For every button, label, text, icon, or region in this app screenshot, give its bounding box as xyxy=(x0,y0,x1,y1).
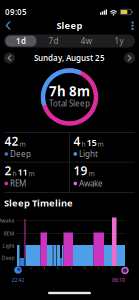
staticText: Awake xyxy=(79,178,103,189)
staticText: Sunday, August 25 xyxy=(34,53,105,63)
staticText: 22:42 xyxy=(11,276,24,284)
staticText: m xyxy=(28,169,34,178)
staticText: Total Sleep xyxy=(49,98,90,109)
staticText: Deep xyxy=(1,254,14,261)
button[interactable] xyxy=(4,52,15,63)
staticText: m xyxy=(19,140,25,148)
staticText: Awake xyxy=(0,217,14,224)
button[interactable] xyxy=(126,18,138,32)
staticText: Light xyxy=(2,242,14,249)
staticText: 4w xyxy=(81,36,92,46)
staticText: Sleep xyxy=(56,19,82,32)
staticText: 7d xyxy=(49,36,59,46)
button[interactable] xyxy=(124,52,135,63)
staticText: 1y xyxy=(114,36,123,46)
button[interactable]: 4w xyxy=(71,35,102,46)
staticText: m xyxy=(88,169,94,178)
staticText: 19 xyxy=(73,162,87,178)
staticText: 06:10 xyxy=(112,276,125,284)
staticText: 1d xyxy=(16,36,26,46)
staticText: 09:05 xyxy=(5,7,27,17)
button[interactable] xyxy=(1,18,15,32)
staticText: 42 xyxy=(4,133,18,149)
staticText: REM xyxy=(3,230,14,237)
staticText: h xyxy=(81,140,85,148)
staticText: h xyxy=(12,169,16,178)
staticText: Light xyxy=(79,149,98,159)
staticText: Deep xyxy=(10,149,31,159)
staticText: 15 xyxy=(86,136,96,149)
staticText: m xyxy=(97,140,103,148)
button[interactable]: 1d xyxy=(5,35,36,46)
staticText: 2 xyxy=(4,162,11,178)
staticText: 11 xyxy=(17,166,27,178)
staticText: 7h 8m xyxy=(49,82,90,100)
staticText: Sleep Timeline xyxy=(4,197,73,209)
button[interactable]: 7d xyxy=(38,35,69,46)
button[interactable]: 1y xyxy=(103,35,134,46)
staticText: 4 xyxy=(73,133,80,149)
staticText: REM xyxy=(10,178,26,189)
